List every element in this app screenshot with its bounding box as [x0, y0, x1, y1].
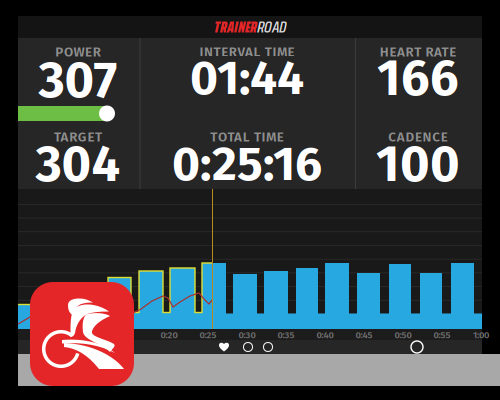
staticText: TOTAL TIME [210, 129, 284, 145]
staticText: 0:40 [316, 329, 333, 341]
staticText: 307 [38, 50, 117, 110]
staticText: INTERVAL TIME [199, 44, 295, 60]
staticText: CADENCE [388, 129, 448, 145]
staticText: 0:25 [199, 329, 216, 341]
staticText: 0:35 [277, 329, 294, 341]
staticText: ROAD [257, 14, 286, 40]
staticText: TARGET [54, 129, 102, 145]
staticText: 100 [376, 134, 460, 194]
staticText: 166 [377, 48, 459, 108]
staticText: 0:30 [238, 329, 255, 341]
staticText: 0:45 [355, 329, 372, 341]
staticText: 304 [35, 134, 120, 194]
staticText: HEART RATE [380, 44, 456, 60]
staticText: TRAINER [214, 14, 257, 40]
staticText: 0:20 [160, 329, 177, 341]
staticText: 01:44 [190, 49, 304, 107]
staticText: POWER [55, 44, 101, 60]
staticText: 0:55 [433, 329, 450, 341]
staticText: 0:50 [394, 329, 411, 341]
staticText: 1:00 [473, 329, 489, 341]
staticText: 0:25:16 [172, 135, 322, 193]
